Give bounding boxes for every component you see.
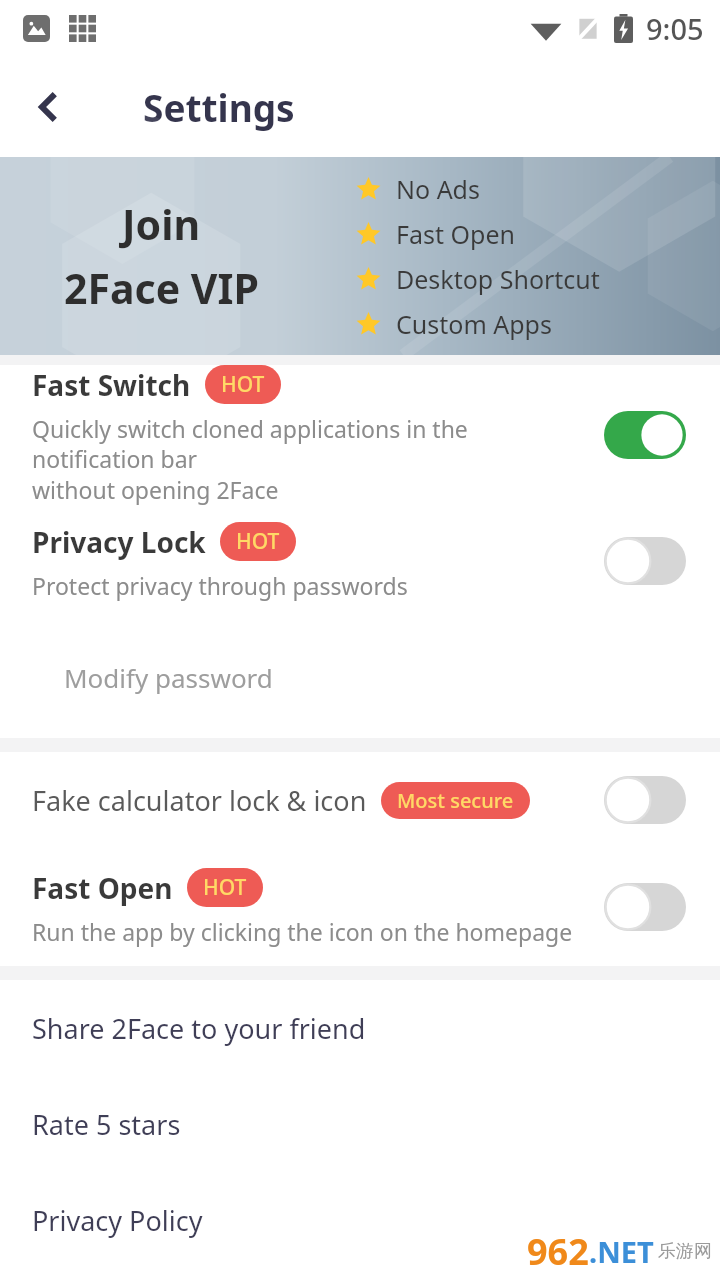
staticText: 962 xyxy=(527,1227,589,1276)
staticText: Most secure xyxy=(397,787,514,814)
button[interactable]: Privacy Lock switch xyxy=(600,529,690,593)
staticText: Desktop Shortcut xyxy=(396,262,600,296)
other: Screenshot xyxy=(22,14,50,42)
staticText: 2Face VIP xyxy=(64,260,259,316)
staticText: HOT xyxy=(203,873,247,902)
other: Apps xyxy=(69,15,96,42)
button[interactable]: Join 2Face VIP xyxy=(0,157,720,355)
staticText: Protect privacy through passwords xyxy=(32,570,408,601)
button[interactable]: Fake calculator lock & icon xyxy=(0,752,720,848)
staticText: Fast Open xyxy=(396,217,515,251)
staticText: Run the app by clicking the icon on the … xyxy=(32,916,573,947)
staticText: Privacy Policy xyxy=(32,1202,203,1239)
staticText: Fast Switch xyxy=(32,366,191,404)
staticText: Custom Apps xyxy=(396,307,552,341)
staticText: Share 2Face to your friend xyxy=(32,1010,366,1047)
staticText: HOT xyxy=(236,527,280,556)
button[interactable]: Rate 5 stars xyxy=(0,1076,720,1172)
staticText: .NET xyxy=(589,1232,654,1271)
button[interactable]: Back xyxy=(20,78,78,136)
staticText: Fake calculator lock & icon xyxy=(32,782,367,819)
button[interactable]: Privacy Lock xyxy=(0,505,720,617)
button[interactable]: Privacy Policy xyxy=(0,1172,720,1268)
staticText: Settings xyxy=(143,82,295,132)
button[interactable]: Fast Open xyxy=(0,848,720,966)
staticText: Quickly switch cloned applications in th… xyxy=(32,413,594,505)
staticText: Privacy Lock xyxy=(32,523,206,561)
staticText: HOT xyxy=(221,370,265,399)
staticText: Modify password xyxy=(64,660,273,695)
staticText: 乐游网 xyxy=(658,1240,712,1263)
staticText: Rate 5 stars xyxy=(32,1106,181,1143)
button[interactable]: Share 2Face to your friend xyxy=(0,980,720,1076)
staticText: No Ads xyxy=(396,172,480,206)
button[interactable]: Modify password xyxy=(0,617,720,738)
staticText: Join xyxy=(122,196,201,252)
button[interactable]: Fast Open switch xyxy=(600,875,690,939)
staticText: Fast Open xyxy=(32,869,173,907)
staticText: 9:05 xyxy=(646,9,704,48)
button[interactable]: Fake calculator lock & icon switch xyxy=(600,768,690,832)
button[interactable]: Fast Switch switch xyxy=(600,403,690,467)
button[interactable]: Fast Switch xyxy=(0,365,720,505)
